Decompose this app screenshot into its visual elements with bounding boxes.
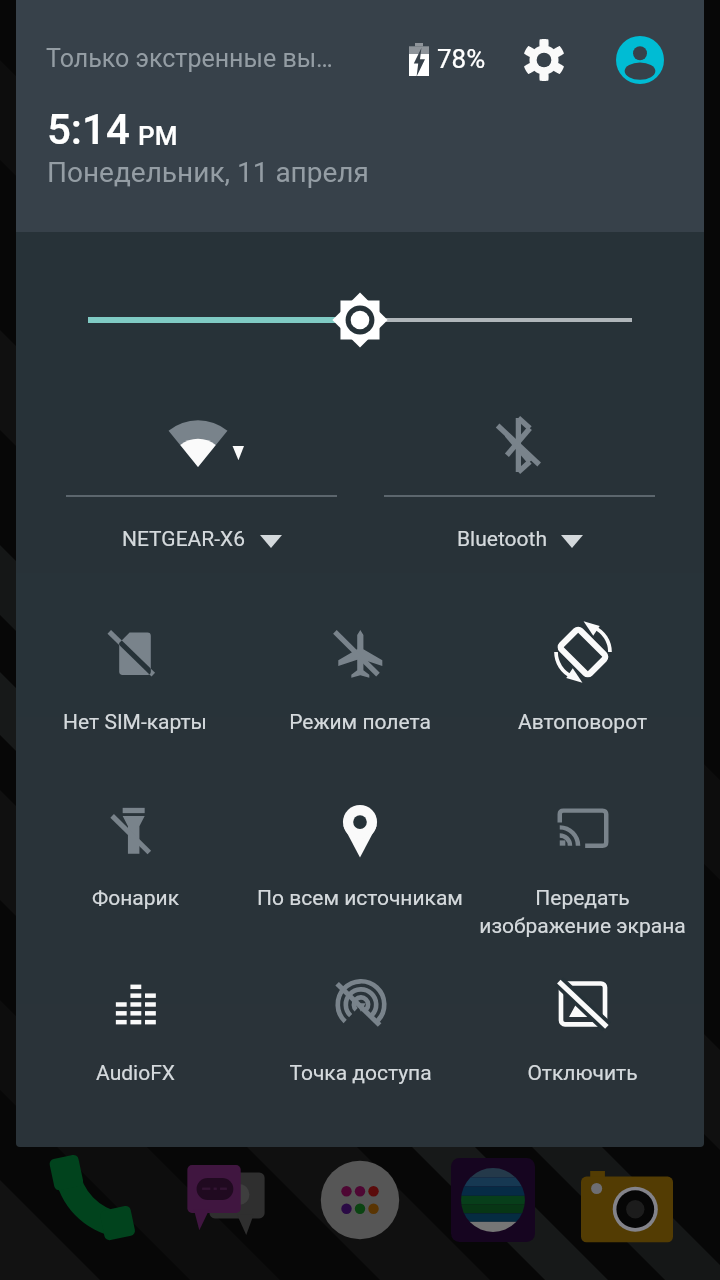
button[interactable]: Фонарик — [23, 780, 247, 940]
button[interactable]: Settings — [504, 20, 584, 100]
button[interactable]: По всем источникам — [248, 780, 472, 940]
button[interactable]: AudioFX — [23, 955, 247, 1115]
button[interactable]: NETGEAR-X6 — [66, 398, 337, 564]
button[interactable]: Messaging — [166, 1140, 286, 1260]
button[interactable]: Brightness — [16, 264, 704, 376]
staticText: Автоповорот — [518, 710, 647, 735]
staticText: PM — [138, 121, 178, 151]
button[interactable]: Нет SIM-карты — [23, 604, 247, 764]
staticText: Режим полета — [289, 710, 431, 735]
staticText: По всем источникам — [257, 886, 463, 911]
button[interactable]: Bluetooth — [384, 398, 655, 564]
staticText: Bluetooth — [457, 527, 547, 552]
button[interactable]: Phone — [32, 1140, 152, 1260]
staticText: Отключить — [527, 1061, 638, 1086]
button[interactable]: Current user — [600, 20, 680, 100]
staticText: AudioFX — [96, 1061, 175, 1086]
button[interactable]: All apps — [300, 1140, 420, 1260]
staticText: 5:14 — [47, 105, 130, 154]
staticText: Передать изображение экрана — [479, 886, 686, 938]
staticText: Точка доступа — [289, 1061, 432, 1086]
button[interactable]: Точка доступа — [248, 955, 472, 1115]
button[interactable]: Передать изображение экрана — [470, 780, 694, 940]
staticText: Понедельник, 11 апреля — [47, 156, 369, 189]
button[interactable]: Режим полета — [248, 604, 472, 764]
staticText: Нет SIM-карты — [63, 710, 207, 735]
button[interactable]: Camera — [567, 1140, 687, 1260]
button[interactable]: Отключить — [470, 955, 694, 1115]
button[interactable]: Автоповорот — [470, 604, 694, 764]
staticText: Фонарик — [92, 886, 179, 911]
staticText: 78% — [437, 44, 486, 74]
button[interactable]: Photos — [433, 1140, 553, 1260]
staticText: Только экстренные вы… — [46, 44, 333, 73]
staticText: NETGEAR-X6 — [122, 527, 246, 552]
